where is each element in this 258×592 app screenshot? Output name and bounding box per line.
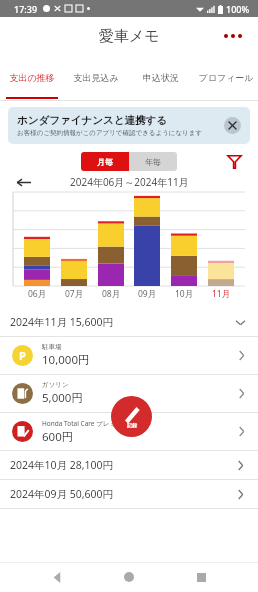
button[interactable]: 戻る — [42, 562, 72, 592]
staticText: 17:39 — [14, 3, 38, 15]
button[interactable]: 支出の推移 — [0, 55, 64, 99]
staticText: お客様のご契約情報がこのアプリで確認できるようになります — [17, 129, 203, 137]
button[interactable]: 申込状況 — [128, 55, 193, 99]
button[interactable]: ホンダファイナンスと連携する — [8, 107, 250, 144]
staticText: 月毎 — [97, 157, 113, 167]
staticText: 愛車メモ — [99, 27, 160, 46]
staticText: 2024年09月 50,600円 — [10, 487, 114, 501]
staticText: プロフィール — [198, 72, 254, 83]
button[interactable]: 2024年10月 28,100円 — [0, 451, 258, 479]
staticText: 支出見込み — [73, 72, 119, 83]
button[interactable]: 月毎 — [81, 152, 129, 171]
staticText: 09月 — [138, 288, 157, 300]
button[interactable]: 2024年09月 50,600円 — [0, 480, 258, 508]
staticText: 申込状況 — [143, 72, 179, 83]
button[interactable]: ガソリン — [0, 375, 258, 412]
button[interactable]: プロフィール — [193, 55, 258, 99]
staticText: 100% — [226, 3, 250, 15]
staticText: 06月 — [28, 288, 47, 300]
button[interactable]: 支出見込み — [64, 55, 128, 99]
staticText: 2024年11月 15,600円 — [10, 315, 114, 329]
button[interactable]: ホーム — [114, 562, 144, 592]
staticText: 07月 — [65, 288, 84, 300]
button[interactable]: 絞り込み — [224, 151, 244, 171]
button[interactable]: 年毎 — [129, 152, 177, 171]
staticText: ガソリン — [42, 381, 69, 389]
staticText: 600円 — [42, 429, 74, 445]
button[interactable]: Honda Total Care プレミアム — [0, 413, 258, 450]
staticText: 5,000円 — [42, 390, 83, 406]
staticText: Honda Total Care プレミアム — [42, 419, 130, 428]
staticText: 11月 — [212, 288, 231, 300]
staticText: 駐車場 — [42, 343, 62, 351]
button[interactable]: 2024年11月 15,600円 — [0, 308, 258, 336]
staticText: 08月 — [102, 288, 121, 300]
staticText: 記録 — [127, 422, 137, 428]
button[interactable]: メニュー — [220, 30, 246, 42]
staticText: 10,000円 — [42, 352, 90, 368]
staticText: 10月 — [175, 288, 194, 300]
button[interactable]: 前へ — [12, 172, 34, 192]
staticText: ホンダファイナンスと連携する — [17, 114, 167, 127]
staticText: 支出の推移 — [9, 72, 55, 83]
button[interactable]: 履歴 — [186, 562, 216, 592]
staticText: P — [19, 348, 26, 363]
staticText: 2024年10月 28,100円 — [10, 458, 114, 472]
staticText: 2024年06月～2024年11月 — [70, 175, 189, 189]
button[interactable]: P — [0, 337, 258, 374]
button[interactable]: 記録 — [111, 396, 152, 437]
staticText: 年毎 — [145, 157, 161, 167]
button[interactable]: 閉じる — [224, 117, 241, 134]
